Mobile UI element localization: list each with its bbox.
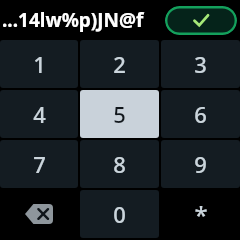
- button[interactable]: 3: [161, 40, 240, 88]
- staticText: 9: [194, 149, 207, 179]
- button[interactable]: 8: [80, 140, 159, 188]
- button[interactable]: 6: [161, 90, 240, 138]
- staticText: ...14lw%p)JN@f: [2, 7, 144, 33]
- staticText: 5: [113, 99, 126, 129]
- button[interactable]: 9: [161, 140, 240, 188]
- button[interactable]: 7: [0, 140, 78, 188]
- button[interactable]: 5: [80, 90, 159, 138]
- staticText: 2: [113, 49, 126, 79]
- button[interactable]: 1: [0, 40, 78, 88]
- staticText: 1: [33, 49, 46, 79]
- staticText: 4: [33, 99, 46, 129]
- staticText: 6: [194, 99, 207, 129]
- staticText: 3: [194, 49, 207, 79]
- button[interactable]: *: [161, 190, 240, 238]
- button[interactable]: 2: [80, 40, 159, 88]
- staticText: 8: [113, 149, 126, 179]
- button[interactable]: Confirm: [165, 6, 237, 35]
- button[interactable]: 0: [80, 190, 159, 238]
- staticText: 7: [33, 149, 46, 179]
- button[interactable]: 4: [0, 90, 78, 138]
- button[interactable]: Backspace: [0, 190, 78, 238]
- staticText: 0: [113, 199, 126, 229]
- staticText: *: [194, 198, 208, 231]
